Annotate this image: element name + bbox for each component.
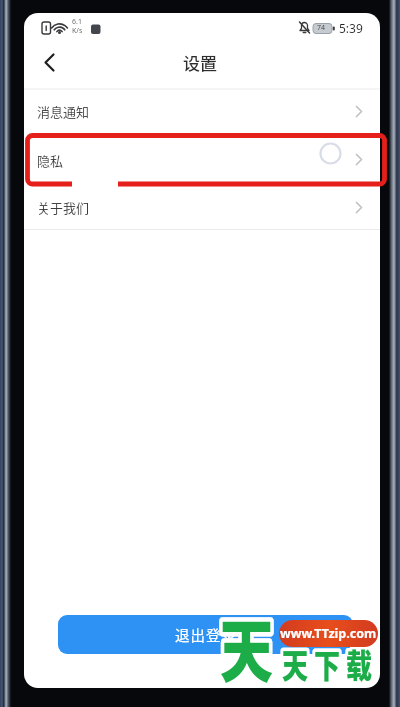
staticText: www.TTzip.com [280, 625, 377, 642]
staticText: 天下载 [282, 640, 379, 688]
staticText: 关于我们 [37, 198, 90, 217]
staticText: 天 [220, 598, 273, 697]
staticText: 天 [220, 598, 273, 697]
button[interactable]: 隐私 [24, 134, 380, 186]
button[interactable] [30, 46, 64, 78]
staticText: 设置 [183, 50, 217, 75]
staticText: 消息通知 [37, 102, 90, 121]
staticText: 天下载 [282, 640, 379, 688]
staticText: 退出登录 [175, 624, 237, 645]
button[interactable]: www.TTzip.com [279, 620, 378, 647]
staticText: 隐私 [37, 151, 64, 170]
staticText: 74 [317, 23, 326, 33]
staticText: 6.1 [72, 17, 82, 27]
button[interactable]: 消息通知 [24, 89, 380, 134]
button[interactable]: 退出登录 [58, 615, 353, 654]
staticText: K/s [72, 26, 83, 36]
staticText: 5:39 [339, 20, 363, 36]
button[interactable]: 关于我们 [24, 186, 380, 229]
